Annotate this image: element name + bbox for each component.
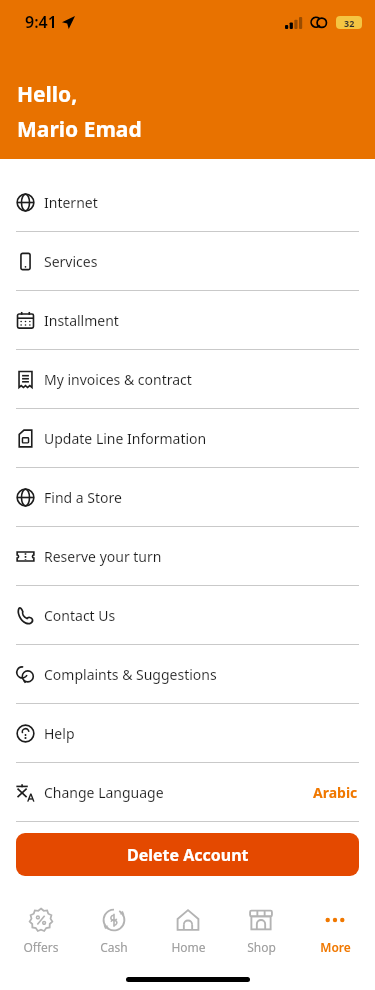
staticText: Help [44, 724, 75, 743]
staticText: Shop [247, 939, 276, 955]
staticText: Update Line Information [44, 429, 207, 448]
staticText: More [320, 939, 351, 955]
button[interactable]: Cash [81, 907, 147, 955]
staticText: 9:41 [25, 11, 57, 33]
staticText: Services [44, 252, 98, 271]
staticText: Mario Emad [17, 115, 142, 144]
staticText: Find a Store [44, 488, 122, 507]
button[interactable]: Change Language [0, 763, 375, 822]
button[interactable]: Update Line Information [0, 409, 375, 468]
button[interactable]: Contact Us [0, 586, 375, 645]
button[interactable]: Delete Account [16, 833, 359, 876]
staticText: Complaints & Suggestions [44, 665, 217, 684]
staticText: Arabic [313, 783, 358, 802]
staticText: Reserve your turn [44, 547, 162, 566]
button[interactable]: Shop [228, 907, 294, 955]
staticText: Cash [100, 939, 128, 955]
staticText: Home [171, 939, 206, 955]
button[interactable]: Home [155, 907, 221, 955]
button[interactable]: Help [0, 704, 375, 763]
button[interactable]: Complaints & Suggestions [0, 645, 375, 704]
staticText: Contact Us [44, 606, 116, 625]
button[interactable]: Reserve your turn [0, 527, 375, 586]
staticText: 32 [344, 17, 355, 29]
button[interactable]: Services [0, 232, 375, 291]
staticText: Installment [44, 311, 119, 330]
button[interactable]: Find a Store [0, 468, 375, 527]
button[interactable]: More [302, 907, 368, 955]
button[interactable]: Installment [0, 291, 375, 350]
button[interactable]: My invoices & contract [0, 350, 375, 409]
staticText: Delete Account [127, 844, 249, 866]
staticText: Internet [44, 193, 98, 212]
button[interactable]: Internet [0, 173, 375, 232]
staticText: Hello, [17, 80, 78, 109]
staticText: Change Language [44, 783, 164, 802]
button[interactable]: Offers [8, 907, 74, 955]
staticText: My invoices & contract [44, 370, 192, 389]
staticText: Offers [23, 939, 59, 955]
